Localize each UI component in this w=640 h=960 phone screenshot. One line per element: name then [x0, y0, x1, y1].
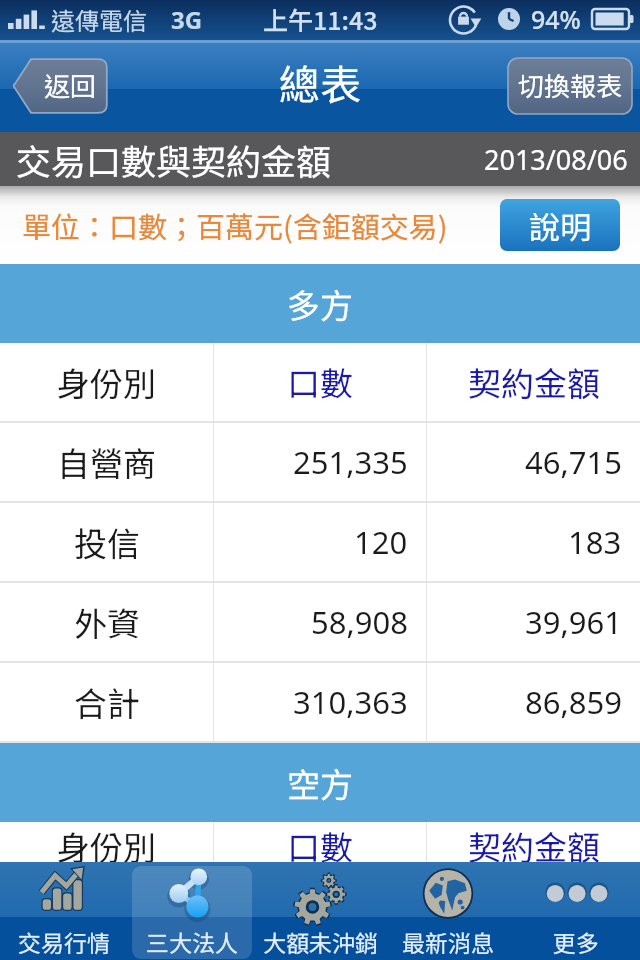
staticText: 身份別: [57, 822, 156, 862]
staticText: 3G: [171, 3, 203, 36]
staticText: 更多: [553, 925, 599, 958]
button[interactable]: 投信: [0, 503, 640, 581]
staticText: 最新消息: [402, 925, 494, 958]
staticText: 多方: [287, 280, 353, 328]
button[interactable]: 三大法人: [132, 866, 252, 959]
staticText: 251,335: [293, 441, 408, 483]
staticText: 空方: [287, 759, 353, 807]
button[interactable]: 說明: [500, 199, 620, 251]
staticText: 口數: [287, 358, 353, 406]
staticText: 120: [354, 521, 408, 563]
staticText: 94%: [531, 2, 581, 36]
staticText: 契約金額: [468, 358, 600, 406]
button[interactable]: 身份別: [0, 343, 640, 421]
staticText: 310,363: [293, 681, 408, 723]
staticText: 遠傳電信: [51, 2, 147, 37]
button[interactable]: 切換報表: [508, 58, 632, 114]
staticText: 大額未沖銷: [263, 925, 378, 958]
staticText: 交易行情: [18, 925, 110, 958]
staticText: 39,961: [525, 601, 622, 643]
staticText: 總表: [279, 52, 361, 111]
button[interactable]: 自營商: [0, 423, 640, 501]
staticText: 切換報表: [518, 66, 623, 104]
staticText: 合計: [74, 678, 140, 726]
staticText: 三大法人: [146, 925, 238, 958]
button[interactable]: 合計: [0, 663, 640, 741]
button[interactable]: 更多: [516, 866, 636, 959]
button[interactable]: 返回: [11, 58, 108, 114]
button[interactable]: 身份別: [0, 822, 640, 862]
button[interactable]: 交易行情: [4, 866, 124, 959]
staticText: 交易口數與契約金額: [16, 134, 332, 185]
staticText: 身份別: [57, 358, 156, 406]
staticText: 2013/08/06: [484, 141, 628, 178]
staticText: 自營商: [57, 438, 156, 486]
staticText: 外資: [74, 598, 140, 646]
staticText: 58,908: [311, 601, 408, 643]
staticText: 口數: [287, 822, 353, 862]
staticText: 說明: [529, 203, 591, 248]
staticText: 上午11:43: [263, 1, 378, 37]
button[interactable]: 外資: [0, 583, 640, 661]
staticText: 單位：口數；百萬元(含鉅額交易): [22, 204, 448, 246]
button[interactable]: 最新消息: [388, 866, 508, 959]
staticText: 46,715: [525, 441, 622, 483]
staticText: 86,859: [525, 681, 622, 723]
staticText: 183: [568, 521, 622, 563]
staticText: 返回: [44, 66, 97, 104]
staticText: 契約金額: [468, 822, 600, 862]
other: Rotation lock: [450, 5, 487, 35]
staticText: 投信: [74, 518, 140, 566]
button[interactable]: 大額未沖銷: [260, 866, 380, 959]
